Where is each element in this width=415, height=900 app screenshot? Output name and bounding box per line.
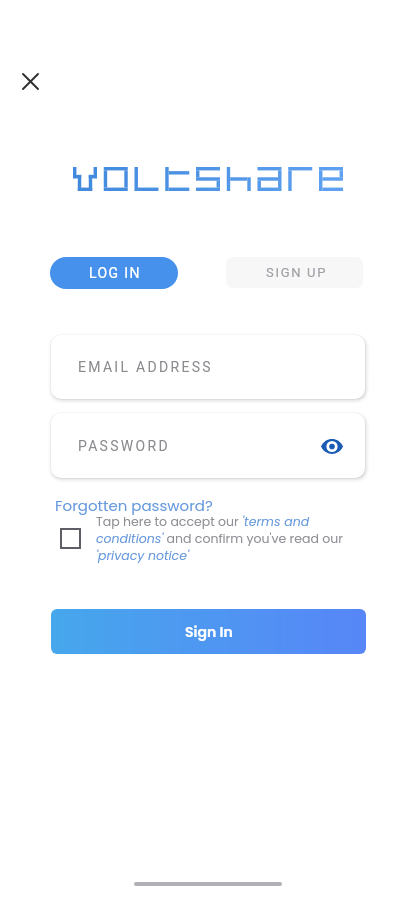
button[interactable]: Forgotten password?: [55, 495, 213, 516]
button[interactable]: SIGN UP: [226, 257, 363, 288]
button[interactable]: Close: [10, 61, 51, 102]
staticText: EMAIL ADDRESS: [78, 359, 213, 375]
button[interactable]: LOG IN: [50, 257, 178, 289]
staticText: SIGN UP: [266, 265, 328, 280]
button[interactable]: Accept terms and conditions: [61, 529, 80, 548]
button[interactable]: Show password: [319, 435, 345, 457]
button[interactable]: EMAIL ADDRESS: [51, 335, 365, 399]
staticText: Tap here to accept our 'terms and condit…: [96, 513, 344, 565]
staticText: Sign In: [185, 622, 233, 642]
staticText: LOG IN: [89, 265, 141, 281]
button[interactable]: Sign In: [51, 609, 366, 654]
staticText: PASSWORD: [78, 438, 170, 454]
button[interactable]: PASSWORD: [51, 413, 365, 478]
